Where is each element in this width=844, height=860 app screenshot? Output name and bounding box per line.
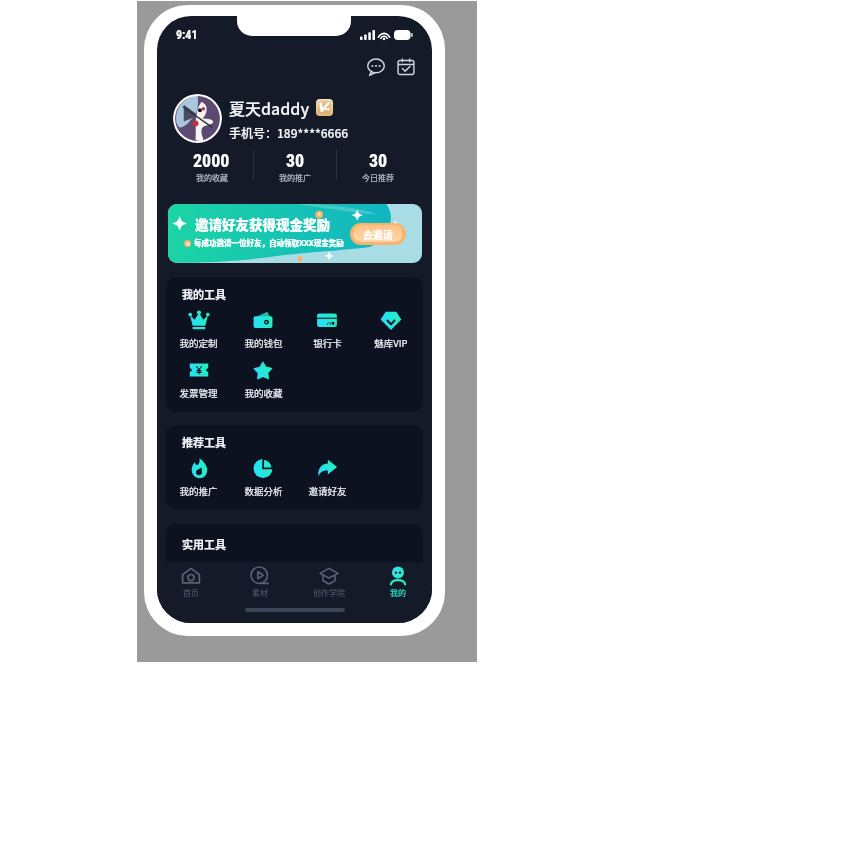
button[interactable]: 邀请好友	[295, 457, 359, 498]
staticText: 发票管理	[179, 386, 218, 400]
staticText: 数据分析	[244, 484, 283, 498]
button[interactable]: 素材	[225, 566, 294, 599]
button[interactable]: 2000	[170, 150, 253, 184]
staticText: 9:41	[176, 28, 198, 42]
button[interactable]: 魅库VIP	[359, 309, 423, 350]
staticText: 魅库VIP	[374, 336, 408, 350]
staticText: 夏天daddy	[229, 96, 310, 119]
button[interactable]: 首页	[157, 566, 225, 599]
button[interactable]: 我的	[363, 566, 432, 599]
staticText: 推荐工具	[182, 434, 226, 450]
staticText: 邀请好友	[308, 484, 347, 498]
staticText: 我的推广	[279, 172, 311, 184]
button[interactable]: Messages	[365, 56, 387, 78]
button[interactable]: 邀请好友获得现金奖励	[168, 204, 422, 263]
button[interactable]: 我的推广	[166, 457, 231, 498]
staticText: 我的钱包	[244, 336, 283, 350]
button[interactable]: 我的钱包	[231, 309, 295, 350]
staticText: 首页	[183, 587, 199, 599]
button[interactable]: Calendar	[395, 56, 417, 78]
staticText: 30	[369, 150, 388, 171]
staticText: 去邀请	[363, 227, 393, 241]
button[interactable]: 数据分析	[231, 457, 295, 498]
staticText: 银行卡	[313, 336, 342, 350]
staticText: 每成功邀请一位好友，自动领取XXX现金奖励	[194, 237, 344, 248]
staticText: 我的推广	[179, 484, 218, 498]
staticText: 我的收藏	[244, 386, 283, 400]
staticText: 今日推荐	[362, 172, 394, 184]
staticText: 我的定制	[179, 336, 218, 350]
staticText: 我的收藏	[196, 172, 228, 184]
button[interactable]: 30	[337, 150, 419, 184]
button[interactable]: 30	[254, 150, 336, 184]
button[interactable]: 创作学院	[294, 566, 363, 599]
staticText: 30	[286, 150, 305, 171]
button[interactable]: 发票管理	[166, 359, 231, 400]
button[interactable]: 银行卡	[295, 309, 359, 350]
staticText: 实用工具	[182, 536, 226, 552]
staticText: 创作学院	[313, 587, 345, 599]
staticText: 手机号：189****6666	[229, 124, 349, 141]
staticText: 邀请好友获得现金奖励	[195, 214, 330, 234]
button[interactable]: 去邀请	[350, 223, 406, 245]
staticText: 2000	[193, 150, 230, 171]
staticText: 我的工具	[182, 286, 226, 302]
button[interactable]: Avatar	[173, 94, 222, 143]
staticText: 素材	[252, 587, 268, 599]
button[interactable]: 我的收藏	[231, 359, 295, 400]
button[interactable]: 我的定制	[166, 309, 231, 350]
staticText: 我的	[390, 587, 406, 599]
